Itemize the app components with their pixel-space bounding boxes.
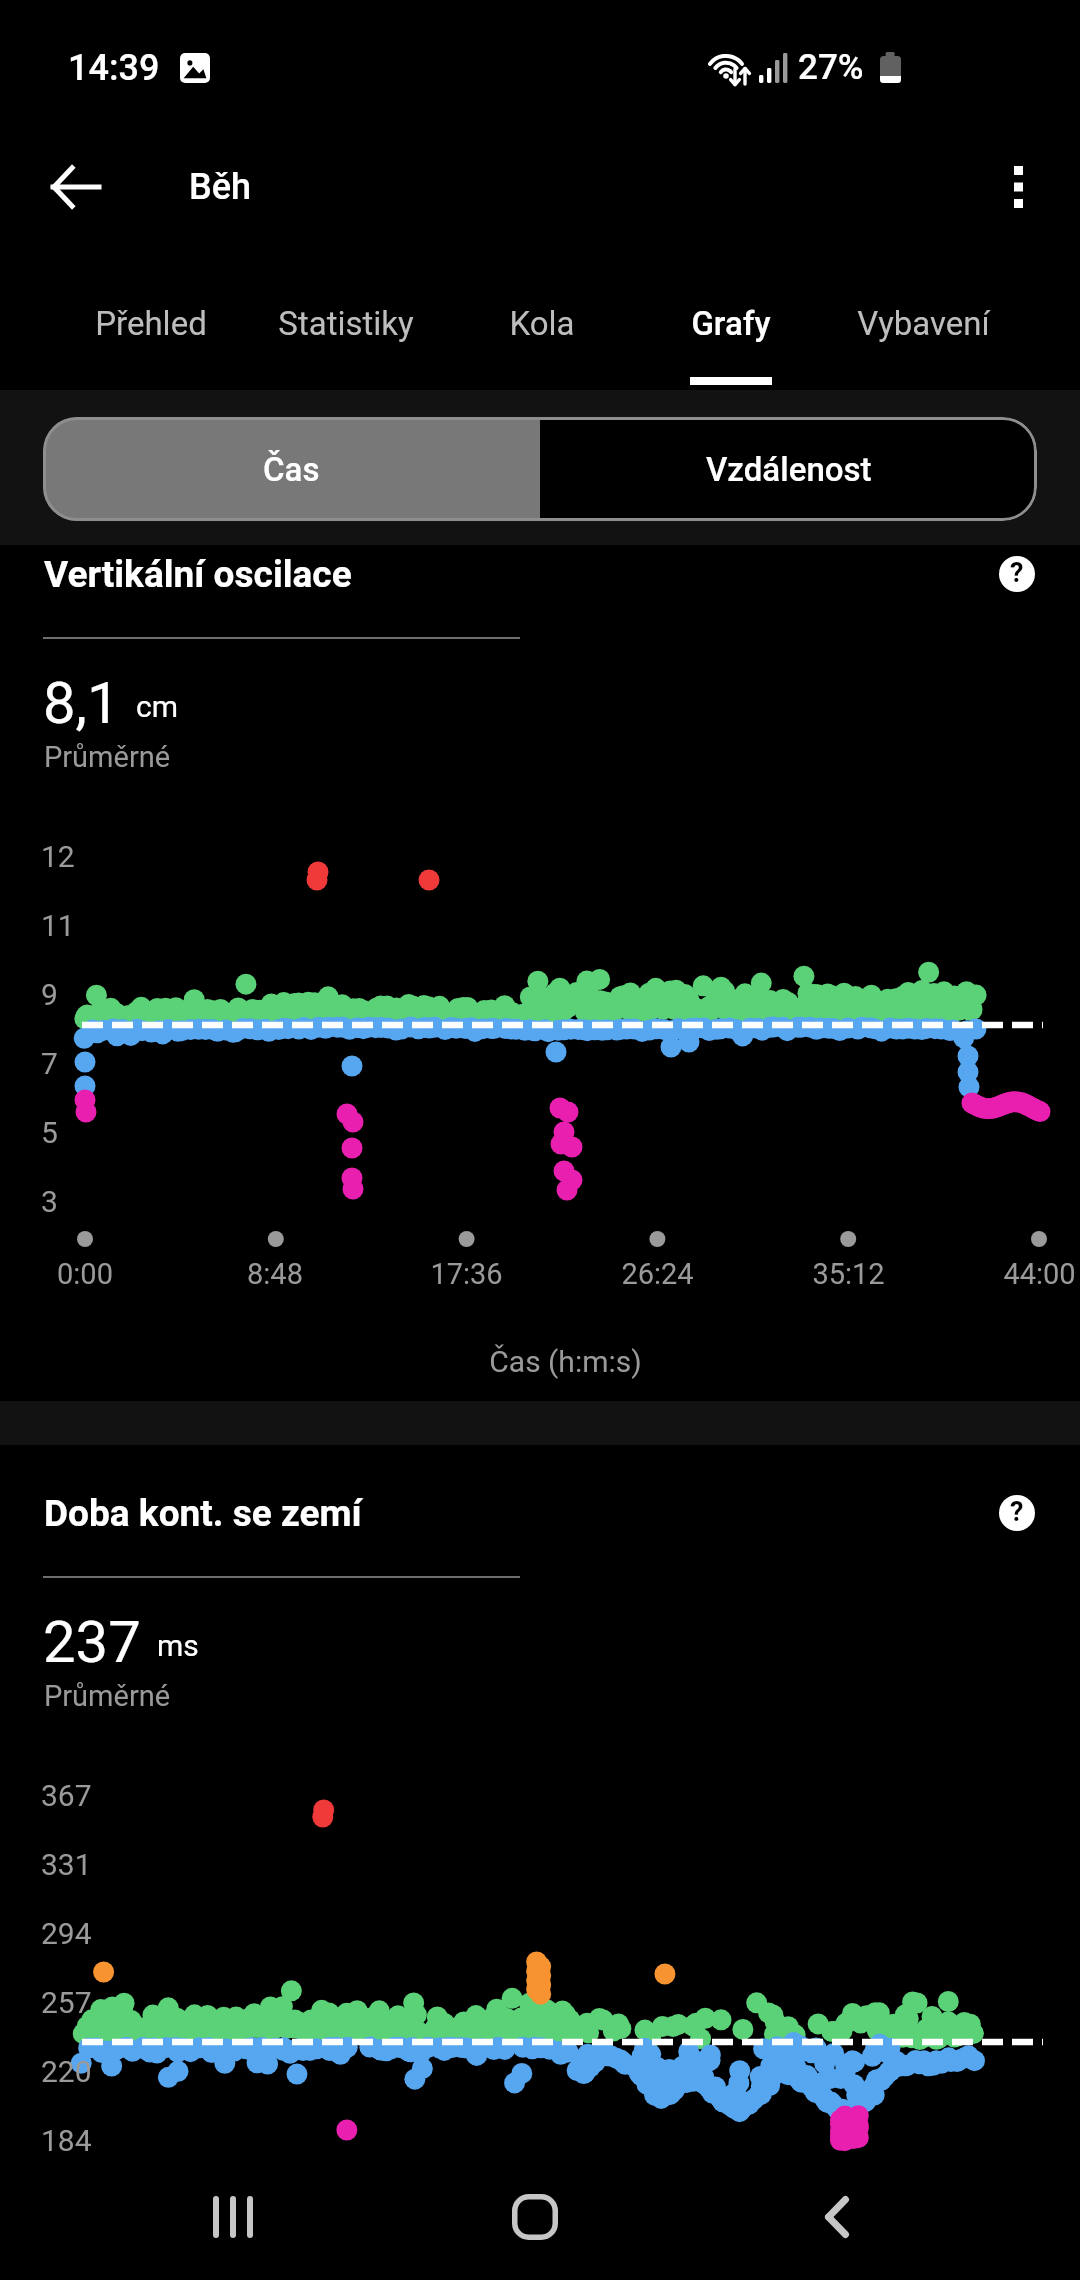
- button[interactable]: Statistiky: [249, 262, 443, 390]
- button[interactable]: Vzdálenost: [540, 417, 1037, 521]
- staticText: 44:00: [1003, 1257, 1076, 1291]
- staticText: 7: [41, 1046, 58, 1081]
- staticText: 35:12: [812, 1257, 885, 1291]
- staticText: Čas: [263, 450, 320, 489]
- staticText: Statistiky: [278, 304, 414, 343]
- staticText: Vertikální oscilace: [44, 553, 352, 596]
- staticText: Vybavení: [857, 304, 990, 343]
- staticText: 3: [41, 1184, 58, 1219]
- staticText: 9: [41, 977, 58, 1012]
- staticText: 184: [41, 2123, 92, 2158]
- button[interactable]: Grafy: [634, 262, 828, 390]
- staticText: 5: [41, 1115, 58, 1150]
- staticText: 0:00: [57, 1257, 113, 1291]
- staticText: 14:39: [68, 47, 160, 89]
- staticText: 27%: [798, 47, 864, 88]
- staticText: Běh: [189, 166, 252, 208]
- staticText: 17:36: [430, 1257, 503, 1291]
- staticText: Průměrné: [44, 740, 171, 774]
- staticText: ?: [1010, 557, 1024, 589]
- staticText: Čas (h:m:s): [489, 1344, 642, 1379]
- button[interactable]: Help: [987, 1483, 1047, 1543]
- button[interactable]: Kola: [445, 262, 639, 390]
- staticText: 11: [41, 908, 75, 943]
- button[interactable]: Back: [782, 2170, 892, 2264]
- staticText: ?: [1010, 1496, 1024, 1528]
- staticText: 237: [43, 1608, 141, 1676]
- staticText: 12: [41, 839, 75, 874]
- staticText: Přehled: [95, 304, 207, 343]
- button[interactable]: Help: [987, 544, 1047, 604]
- staticText: 367: [41, 1778, 92, 1813]
- button[interactable]: Back: [30, 142, 120, 232]
- staticText: 331: [41, 1847, 92, 1882]
- staticText: ms: [157, 1628, 199, 1663]
- button[interactable]: More options: [973, 142, 1063, 232]
- staticText: 257: [41, 1985, 92, 2020]
- button[interactable]: Čas: [43, 417, 540, 521]
- staticText: Kola: [509, 304, 575, 343]
- button[interactable]: Přehled: [54, 262, 248, 390]
- button[interactable]: Home: [480, 2170, 590, 2264]
- staticText: Grafy: [691, 304, 771, 343]
- staticText: 8,1: [43, 669, 120, 737]
- staticText: Průměrné: [44, 1679, 171, 1713]
- staticText: 294: [41, 1916, 92, 1951]
- button[interactable]: Recent apps: [178, 2170, 288, 2264]
- staticText: 26:24: [621, 1257, 694, 1291]
- staticText: 220: [41, 2054, 92, 2089]
- staticText: Doba kont. se zemí: [44, 1492, 362, 1535]
- staticText: cm: [136, 689, 179, 724]
- staticText: Vzdálenost: [706, 450, 872, 489]
- staticText: 8:48: [247, 1257, 303, 1291]
- button[interactable]: Vybavení: [826, 262, 1020, 390]
